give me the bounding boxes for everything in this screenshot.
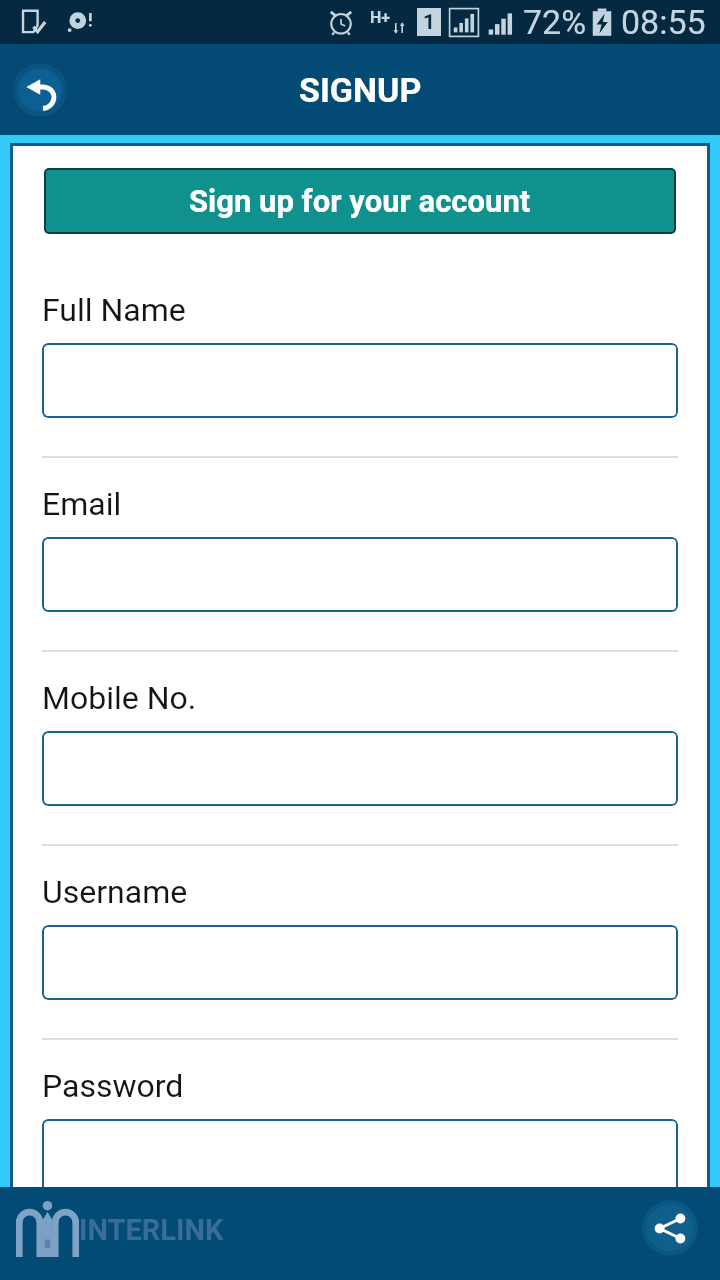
staticText: H+ <box>370 8 391 27</box>
button[interactable]: Back <box>13 63 67 117</box>
staticText: INTERLINK <box>79 1213 224 1247</box>
button[interactable] <box>42 731 678 806</box>
staticText: Email <box>42 485 122 523</box>
staticText: 1 <box>423 10 436 35</box>
button[interactable]: Share <box>642 1200 698 1256</box>
button[interactable] <box>42 925 678 1000</box>
staticText: Username <box>42 873 188 911</box>
staticText: Mobile No. <box>42 679 197 717</box>
button[interactable] <box>42 343 678 418</box>
staticText: 72% <box>523 2 587 42</box>
staticText: 08:55 <box>621 2 706 42</box>
staticText: Full Name <box>42 291 186 329</box>
staticText: SIGNUP <box>299 70 422 110</box>
staticText: Password <box>42 1067 184 1105</box>
button[interactable]: Sign up for your account <box>44 168 676 234</box>
button[interactable] <box>42 537 678 612</box>
button[interactable] <box>42 1119 678 1194</box>
staticText: Sign up for your account <box>189 183 531 219</box>
